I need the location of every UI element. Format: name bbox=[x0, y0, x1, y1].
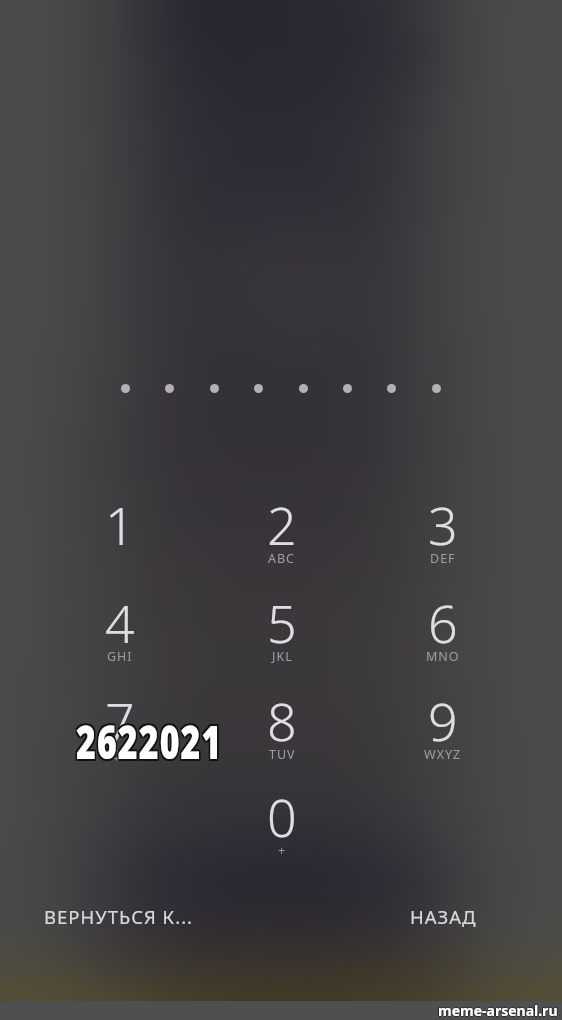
button[interactable]: 1 bbox=[39, 489, 201, 585]
button[interactable]: 3 bbox=[362, 489, 524, 585]
staticText: meme-arsenal.ru bbox=[439, 1001, 559, 1020]
other: PIN entry progress, 8 digits bbox=[118, 378, 444, 400]
staticText: + bbox=[278, 842, 287, 859]
button[interactable]: 8 bbox=[201, 685, 363, 781]
staticText: ABC bbox=[268, 550, 296, 567]
staticText: meme-arsenal.ru bbox=[438, 1002, 558, 1020]
staticText: 2622021 bbox=[77, 709, 224, 772]
staticText: 5 bbox=[267, 587, 297, 658]
staticText: 2 bbox=[267, 489, 297, 560]
staticText: 7 bbox=[105, 685, 135, 756]
staticText: 2622021 bbox=[76, 709, 222, 772]
staticText: TUV bbox=[269, 746, 296, 763]
staticText: 2622021 bbox=[75, 707, 221, 770]
button[interactable]: 0 bbox=[201, 781, 363, 877]
staticText: GHI bbox=[107, 648, 133, 665]
staticText: 2622021 bbox=[75, 711, 221, 774]
staticText: НАЗАД bbox=[410, 904, 477, 929]
staticText: 2622021 bbox=[77, 707, 224, 770]
staticText: PQRS bbox=[102, 746, 138, 763]
staticText: 4 bbox=[105, 587, 135, 658]
staticText: meme-arsenal.ru bbox=[438, 1001, 558, 1020]
button[interactable]: ВЕРНУТЬСЯ К... bbox=[24, 893, 214, 939]
staticText: 8 bbox=[267, 685, 297, 756]
staticText: ВЕРНУТЬСЯ К... bbox=[44, 904, 194, 929]
button[interactable]: НАЗАД bbox=[387, 893, 499, 939]
button[interactable]: 9 bbox=[362, 685, 524, 781]
staticText: meme-arsenal.ru bbox=[437, 1001, 557, 1020]
staticText: 2622021 bbox=[75, 709, 221, 772]
staticText: 2622021 bbox=[77, 711, 224, 774]
staticText: JKL bbox=[272, 648, 293, 665]
staticText: 1 bbox=[105, 489, 135, 560]
staticText: 2622021 bbox=[76, 707, 222, 770]
button[interactable]: 7 bbox=[39, 685, 201, 781]
staticText: meme-arsenal.ru bbox=[438, 1000, 558, 1019]
staticText: 2622021 bbox=[76, 711, 222, 774]
staticText: 9 bbox=[428, 685, 458, 756]
button[interactable]: 2 bbox=[201, 489, 363, 585]
staticText: MNO bbox=[426, 648, 460, 665]
staticText: 6 bbox=[428, 587, 458, 658]
staticText: 0 bbox=[267, 781, 297, 852]
button[interactable]: 4 bbox=[39, 587, 201, 683]
staticText: DEF bbox=[430, 550, 456, 567]
staticText: WXYZ bbox=[424, 746, 462, 763]
staticText: 3 bbox=[428, 489, 458, 560]
button[interactable]: 6 bbox=[362, 587, 524, 683]
button[interactable]: 5 bbox=[201, 587, 363, 683]
